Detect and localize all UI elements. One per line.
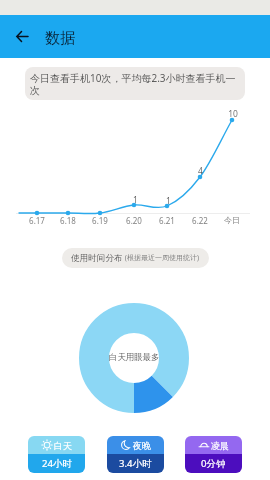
staticText: 凌晨 [211,440,229,451]
staticText: 3.4小时 [119,457,152,470]
staticText: 4 [198,165,203,177]
staticText: 6.22 [192,215,208,226]
staticText: 夜晚 [133,440,151,451]
button[interactable]: 白天 [28,436,85,473]
staticText: 10 [228,108,238,120]
staticText: (根据最近一周使用统计) [123,253,200,263]
staticText: 0分钟 [201,457,226,470]
staticText: 白天用眼最多 [109,352,160,363]
button[interactable]: 凌晨 [185,436,242,473]
staticText: 6.18 [60,215,76,226]
staticText: 白天 [54,440,72,451]
staticText: 今日 [224,215,240,225]
staticText: 6.17 [29,215,45,226]
button[interactable]: 夜晚 [107,436,164,473]
staticText: 24小时 [42,457,72,470]
button[interactable]: 使用时间分布 [62,248,209,268]
staticText: 数据 [45,29,75,48]
staticText: 使用时间分布 [71,253,123,264]
staticText: 今日查看手机10次，平均每2.3小时查看手机一次 [30,71,241,97]
staticText: 6.19 [92,215,108,226]
staticText: 1 [166,195,171,207]
staticText: 6.20 [126,215,142,226]
staticText: 1 [133,194,138,206]
button[interactable]: Back [6,21,37,52]
staticText: 6.21 [159,215,175,226]
